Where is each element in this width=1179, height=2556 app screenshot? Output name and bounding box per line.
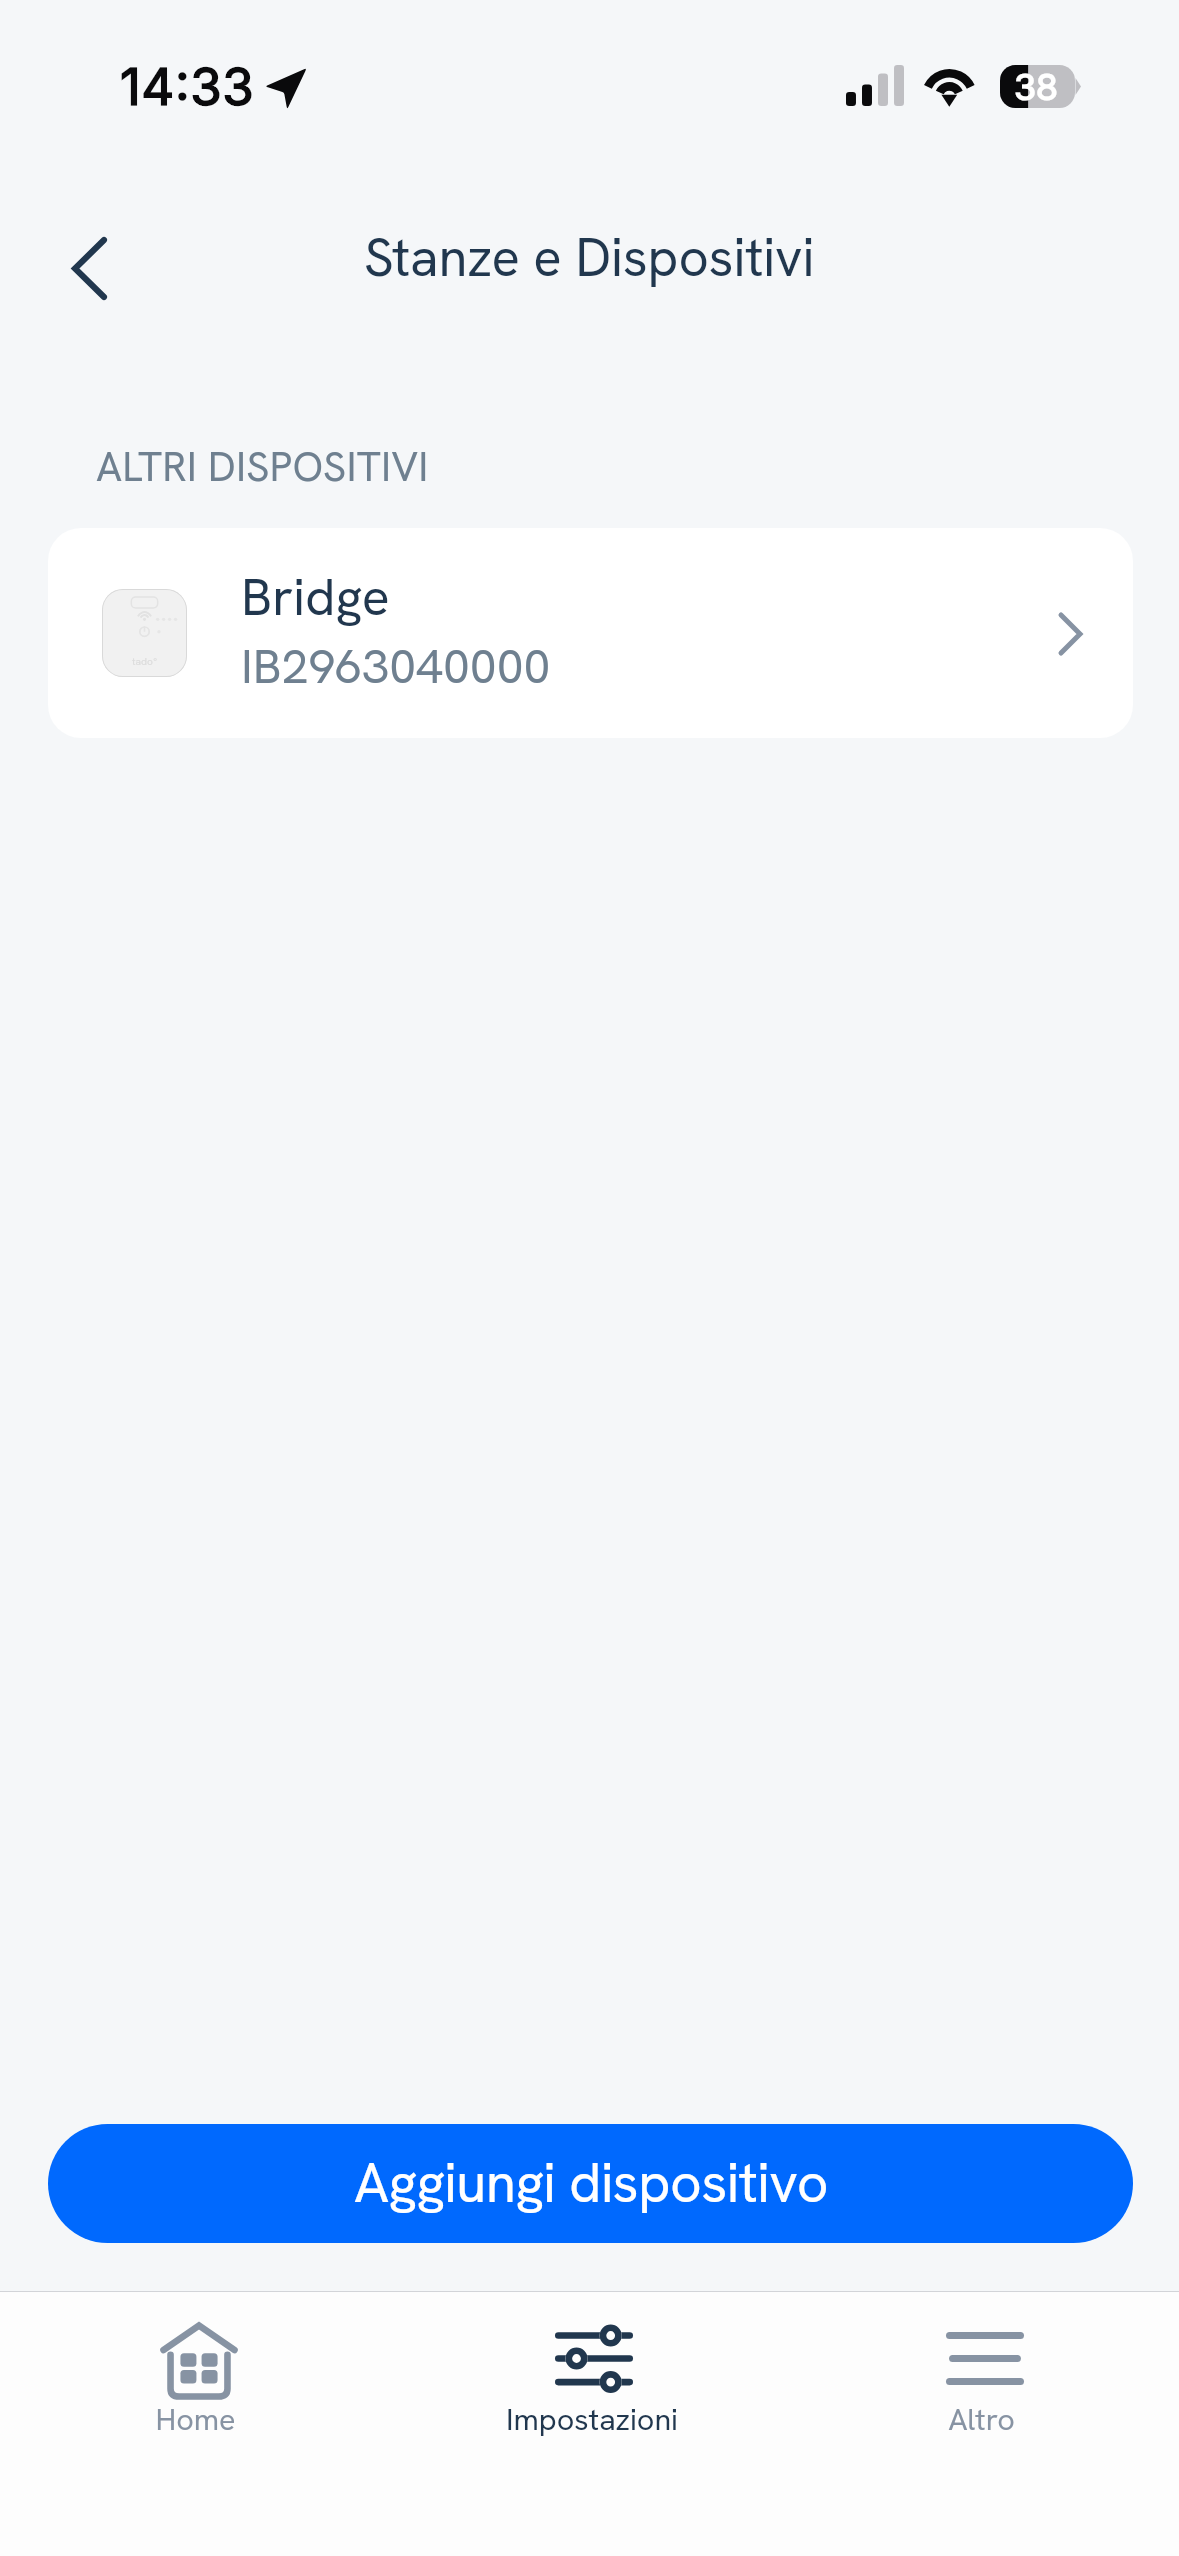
staticText: Home bbox=[155, 2399, 236, 2439]
button[interactable]: tado° bbox=[48, 528, 1133, 738]
button[interactable]: Impostazioni bbox=[393, 2292, 786, 2556]
staticText: 14:33 bbox=[120, 56, 255, 118]
staticText: Impostazioni bbox=[506, 2399, 678, 2439]
staticText: tado° bbox=[132, 655, 158, 668]
staticText: Aggiungi dispositivo bbox=[354, 2147, 828, 2219]
button[interactable]: Altro bbox=[786, 2292, 1179, 2556]
button[interactable]: Home bbox=[0, 2292, 393, 2556]
staticText: Stanze e Dispositivi bbox=[364, 223, 815, 292]
staticText: Altro bbox=[948, 2399, 1015, 2439]
staticText: 38 bbox=[1014, 65, 1058, 108]
button[interactable]: Aggiungi dispositivo bbox=[48, 2124, 1133, 2243]
staticText: ALTRI DISPOSITIVI bbox=[96, 440, 429, 494]
staticText: Bridge bbox=[241, 563, 390, 631]
staticText: IB2963040000 bbox=[241, 635, 551, 698]
button[interactable]: Back bbox=[31, 202, 148, 334]
